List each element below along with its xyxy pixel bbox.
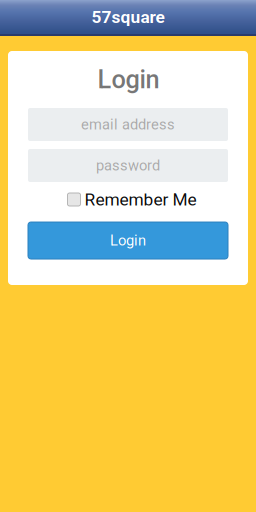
staticText: email address <box>81 116 175 133</box>
staticText: Login <box>97 65 159 94</box>
staticText: 57square <box>91 7 164 27</box>
staticText: password <box>96 157 160 174</box>
button[interactable]: Remember Me <box>32 188 232 210</box>
button[interactable]: Login <box>28 222 228 259</box>
staticText: Remember Me <box>84 189 196 210</box>
staticText: Login <box>110 232 146 249</box>
